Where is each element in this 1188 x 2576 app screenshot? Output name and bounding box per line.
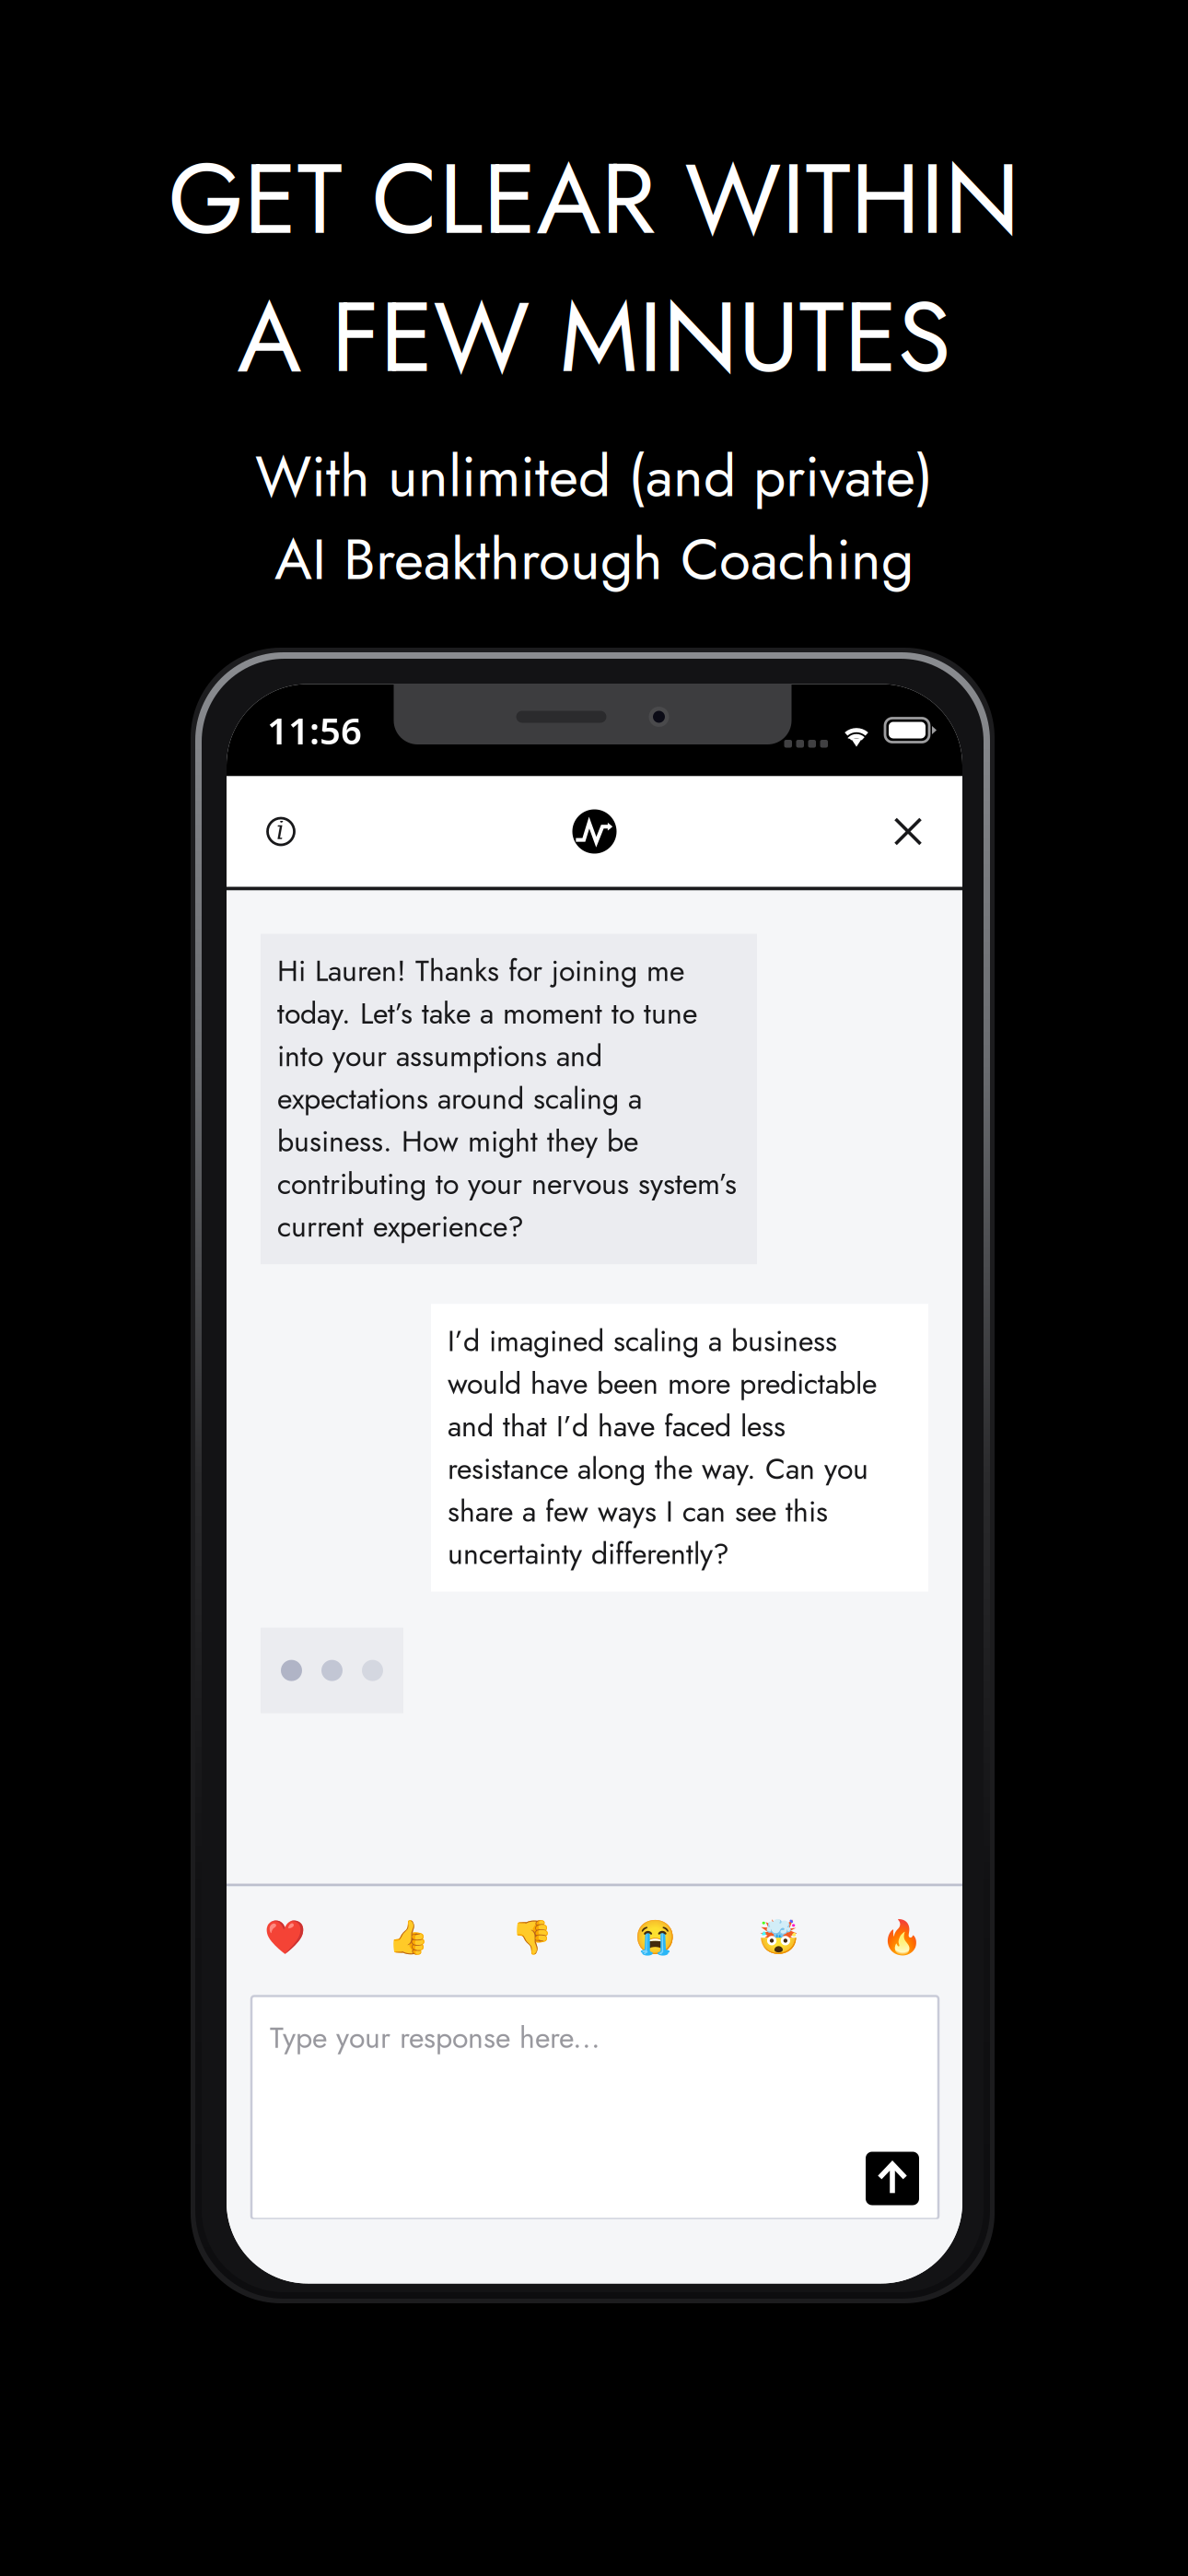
button[interactable]: 🤯 — [716, 1898, 840, 1976]
staticText: A FEW MINUTES — [237, 267, 951, 408]
staticText: 👍 — [387, 1918, 429, 1956]
staticText: 🤯 — [757, 1918, 799, 1956]
button[interactable]: 😭 — [593, 1898, 716, 1976]
staticText: i — [276, 816, 285, 845]
button[interactable]: 👎 — [470, 1898, 593, 1976]
button[interactable]: 👍 — [346, 1898, 470, 1976]
staticText: I’d imagined scaling a business would ha… — [448, 1320, 877, 1575]
staticText: ❤️ — [264, 1918, 305, 1956]
staticText: GET CLEAR WITHIN — [168, 128, 1020, 270]
staticText: 🔥 — [881, 1918, 922, 1956]
staticText: 😭 — [634, 1918, 676, 1956]
staticText: 11:56 — [267, 706, 362, 755]
staticText: AI Breakthrough Coaching — [274, 518, 914, 601]
staticText: With unlimited (and private) — [255, 435, 933, 518]
button[interactable]: Close — [854, 776, 962, 887]
staticText: Type your response here... — [270, 2016, 600, 2059]
staticText: Hi Lauren! Thanks for joining me today. … — [277, 949, 737, 1248]
button[interactable]: Send — [866, 2152, 919, 2205]
button[interactable]: 🔥 — [840, 1898, 963, 1976]
staticText: 👎 — [511, 1918, 552, 1956]
button[interactable]: ❤️ — [223, 1898, 346, 1976]
button[interactable]: Information — [227, 776, 335, 887]
